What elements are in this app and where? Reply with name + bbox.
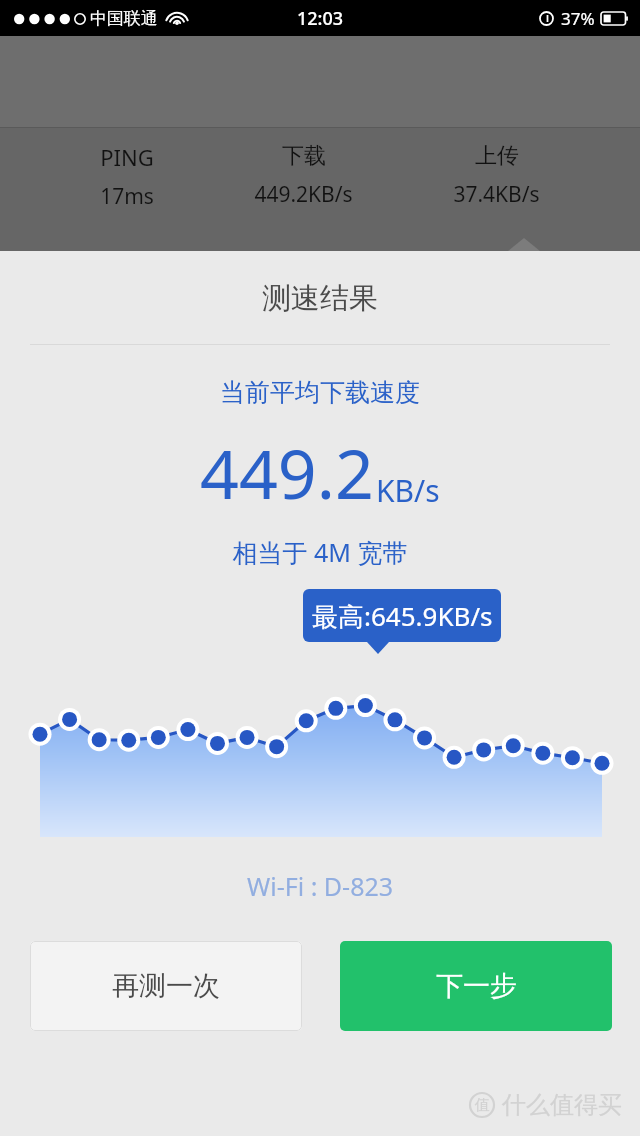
staticText: 下一步 <box>436 969 517 1003</box>
staticText: 什么值得买 <box>502 1090 622 1120</box>
staticText: 中国联通 <box>90 8 158 29</box>
staticText: 测速结果 <box>0 280 640 317</box>
staticText: 最高:645.9KB/s <box>312 598 493 634</box>
staticText: 449.2KB/s <box>254 180 353 209</box>
staticText: 值 <box>475 1096 490 1115</box>
staticText: 上传 <box>475 142 519 170</box>
staticText: Wi-Fi : D-823 <box>0 869 640 903</box>
button[interactable]: 再测一次 <box>30 941 302 1031</box>
staticText: 37.4KB/s <box>453 180 540 209</box>
staticText: 12:03 <box>297 6 344 31</box>
staticText: 当前平均下载速度 <box>0 377 640 408</box>
staticText: 相当于 4M 宽带 <box>0 535 640 569</box>
staticText: PING <box>100 142 154 172</box>
button[interactable]: 下一步 <box>340 941 612 1031</box>
staticText: 449.2 <box>200 426 374 519</box>
staticText: 17ms <box>100 182 154 211</box>
staticText: 下载 <box>282 142 326 170</box>
staticText: 37% <box>561 7 595 30</box>
staticText: KB/s <box>376 470 440 511</box>
staticText: 再测一次 <box>112 969 220 1003</box>
